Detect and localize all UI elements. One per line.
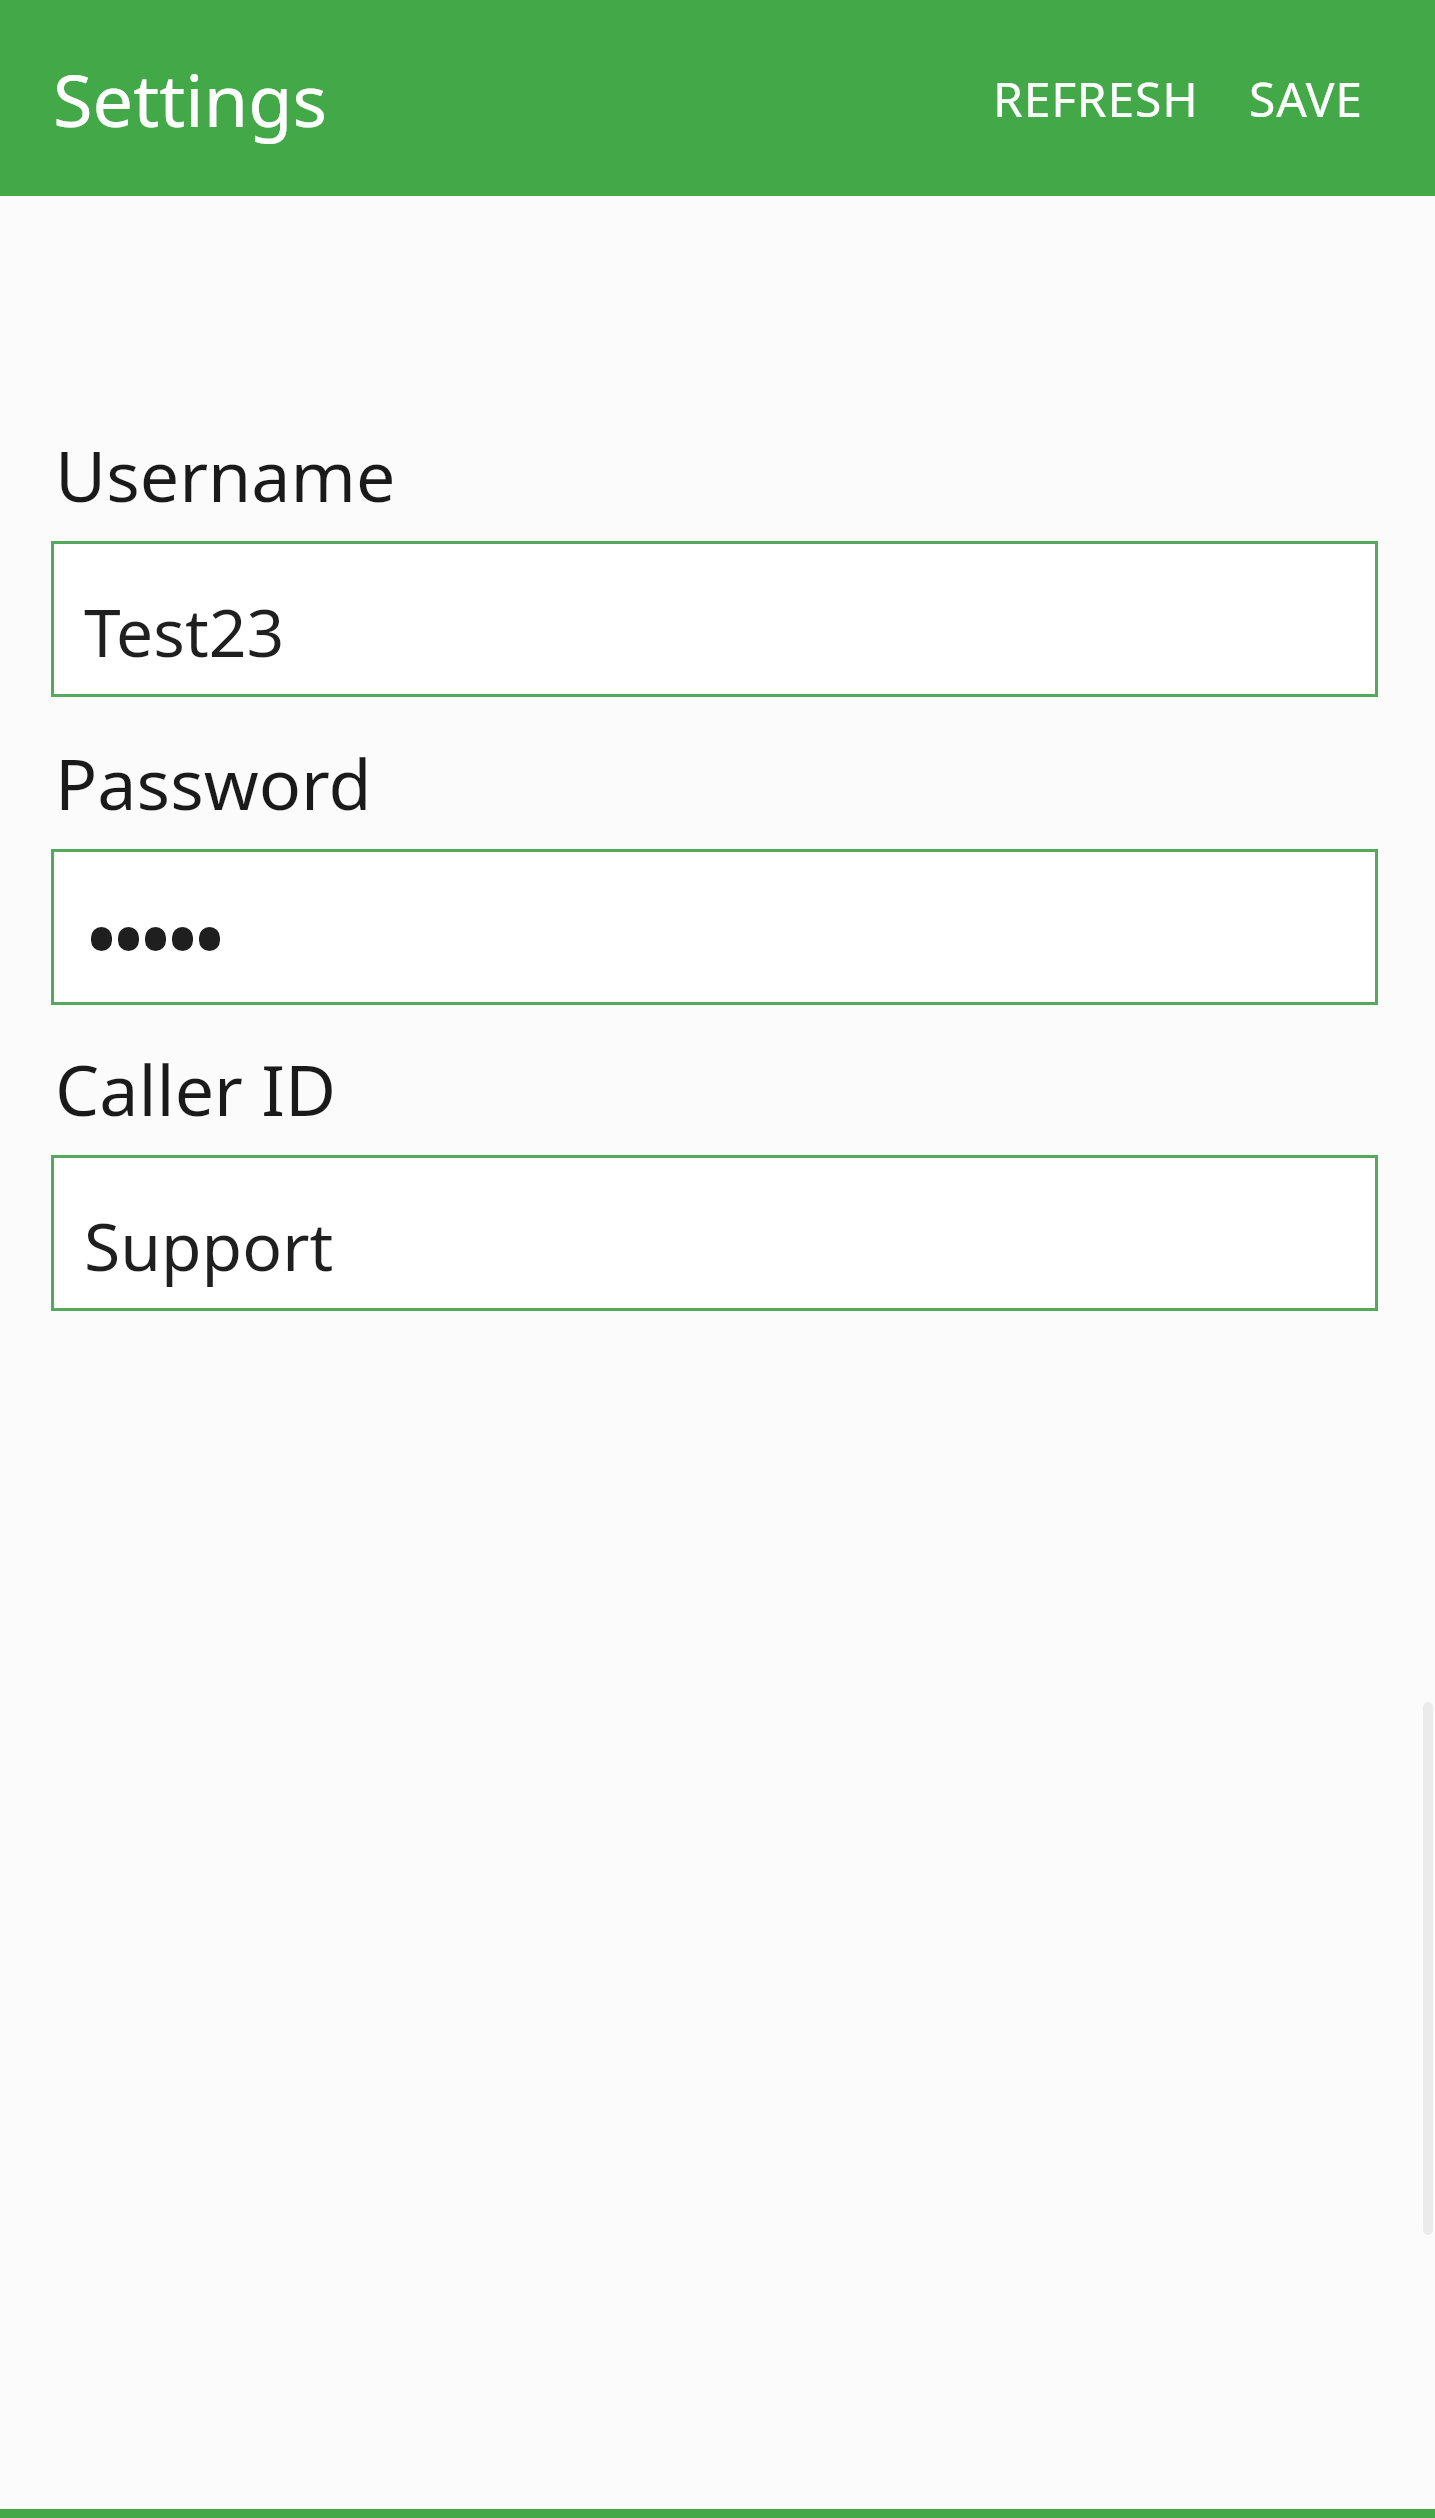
staticText: Test23 (84, 586, 285, 676)
button[interactable]: REFRESH (989, 50, 1203, 147)
staticText: Username (55, 427, 396, 522)
staticText: Settings (53, 50, 327, 148)
staticText: Caller ID (55, 1041, 337, 1136)
staticText: Support (84, 1200, 334, 1290)
button[interactable]: Support (51, 1155, 1378, 1311)
button[interactable] (51, 849, 1378, 1005)
button[interactable]: SAVE (1245, 50, 1367, 147)
staticText: SAVE (1249, 66, 1363, 131)
button[interactable]: Test23 (51, 541, 1378, 697)
staticText: REFRESH (993, 66, 1199, 131)
staticText: Password (55, 735, 372, 830)
